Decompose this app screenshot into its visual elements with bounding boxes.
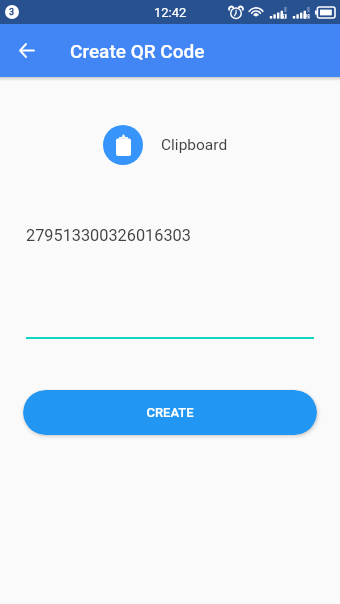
staticText: Create QR Code (70, 40, 205, 62)
staticText: CREATE (146, 405, 194, 420)
button[interactable]: CREATE (23, 390, 317, 435)
staticText: Clipboard (161, 136, 228, 154)
button[interactable]: Back (0, 24, 53, 77)
staticText: 3 (9, 7, 15, 18)
staticText: 279513300326016303 (26, 226, 191, 245)
staticText: 12:42 (154, 5, 187, 20)
button[interactable]: Clipboard source (103, 125, 143, 165)
button[interactable]: 279513300326016303 (26, 226, 314, 338)
